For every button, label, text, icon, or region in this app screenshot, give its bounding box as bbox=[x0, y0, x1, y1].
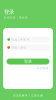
staticText: 登录 bbox=[4, 9, 14, 15]
staticText: 忘记密码? bbox=[36, 66, 49, 70]
staticText: 还没有账号？立即注册 bbox=[13, 94, 43, 97]
staticText: 请输入密码 bbox=[12, 46, 27, 49]
staticText: 请输入手机号 bbox=[12, 38, 30, 41]
staticText: 欢迎回来，请登录 bbox=[4, 16, 28, 19]
button[interactable]: 还没有账号？立即注册 bbox=[13, 94, 43, 97]
button[interactable]: 忘记密码? bbox=[6, 66, 49, 70]
staticText: 登录 bbox=[24, 59, 32, 64]
button[interactable]: 登录 bbox=[6, 58, 49, 64]
